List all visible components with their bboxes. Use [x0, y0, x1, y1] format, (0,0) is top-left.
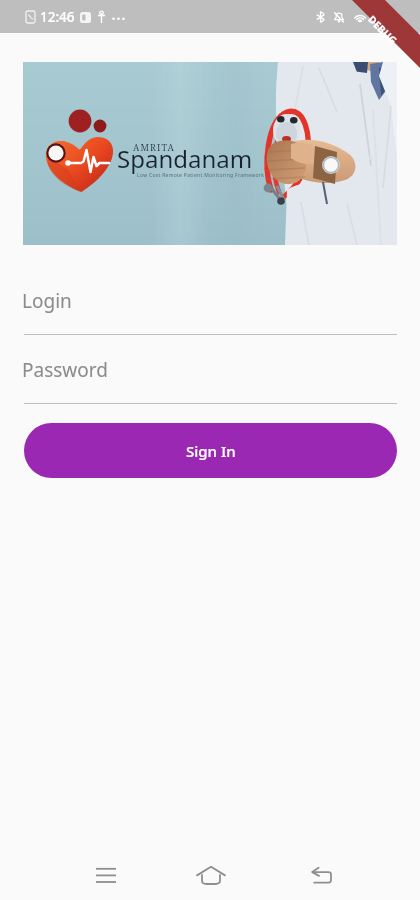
button[interactable]: Back [301, 855, 341, 895]
staticText: 100 [378, 12, 392, 23]
staticText: Low Cost Remote Patient Monitoring Frame… [137, 172, 265, 179]
staticText: AMRITA [133, 141, 175, 153]
staticText: 12:46 [40, 8, 75, 26]
button[interactable]: Home [191, 855, 231, 895]
button[interactable]: Recent apps [86, 855, 126, 895]
staticText: Password [22, 357, 108, 383]
button[interactable]: Sign In [24, 423, 397, 478]
staticText: DEBUG [365, 12, 401, 48]
staticText: Spandanam [117, 142, 253, 175]
staticText: Login [22, 288, 72, 314]
staticText: Sign In [186, 441, 236, 461]
